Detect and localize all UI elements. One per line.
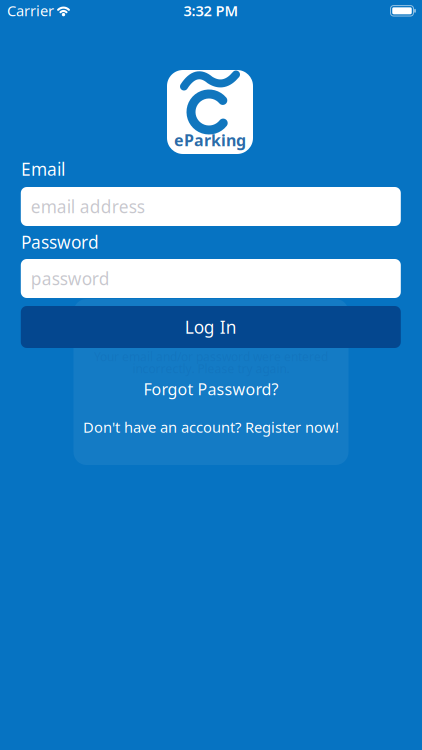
staticText: Log In bbox=[185, 315, 237, 338]
staticText: Don't have an account? Register now! bbox=[83, 417, 339, 437]
staticText: Carrier bbox=[7, 1, 54, 20]
staticText: Forgot Password? bbox=[143, 378, 278, 400]
staticText: Email bbox=[21, 157, 65, 180]
staticText: 3:32 PM bbox=[183, 1, 238, 20]
staticText: eParking bbox=[174, 129, 246, 151]
staticText: Password bbox=[21, 230, 99, 253]
staticText: password bbox=[31, 267, 110, 290]
staticText: email address bbox=[31, 195, 145, 218]
